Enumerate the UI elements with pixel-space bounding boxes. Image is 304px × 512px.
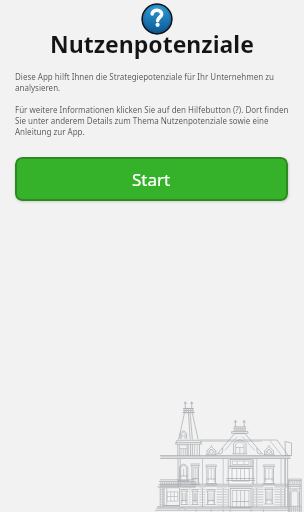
button[interactable]: Start bbox=[17, 159, 286, 199]
staticText: Start bbox=[132, 168, 171, 191]
staticText: Für weitere Informationen klicken Sie au… bbox=[15, 104, 293, 137]
staticText: Diese App hilft Ihnen die Strategiepoten… bbox=[15, 71, 293, 93]
staticText: Nutzenpotenziale bbox=[0, 28, 304, 59]
button[interactable]: Hilfe bbox=[141, 3, 173, 35]
